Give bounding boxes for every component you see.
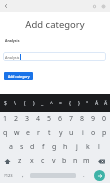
button[interactable]: n <box>70 154 81 168</box>
button[interactable]: = <box>56 94 65 112</box>
staticText: h <box>63 142 68 152</box>
button[interactable]: ) <box>29 94 38 112</box>
button[interactable]: j <box>71 140 82 154</box>
staticText: 9 <box>91 114 96 124</box>
staticText: f <box>42 142 45 152</box>
button[interactable]: 9 <box>88 112 99 126</box>
button[interactable]: 5 <box>44 112 55 126</box>
staticText: Å <box>95 100 99 107</box>
staticText: . <box>83 171 85 179</box>
staticText: = <box>59 100 62 107</box>
button[interactable]: u <box>66 126 77 140</box>
button[interactable]: z <box>14 154 26 168</box>
button[interactable]: d <box>27 140 38 154</box>
button[interactable]: m <box>81 154 92 168</box>
staticText: t <box>48 128 51 138</box>
button[interactable]: r <box>33 126 44 140</box>
staticText: e <box>26 128 30 138</box>
button[interactable]: g <box>49 140 60 154</box>
button[interactable]: _ <box>38 94 47 112</box>
button[interactable]: f <box>38 140 49 154</box>
button[interactable]: { <box>65 94 74 112</box>
button[interactable]: t <box>44 126 55 140</box>
staticText: u <box>69 128 74 138</box>
staticText: l <box>98 142 100 152</box>
button[interactable]: ^ <box>47 94 56 112</box>
staticText: ° <box>86 100 89 107</box>
button[interactable]: Ä <box>101 94 110 112</box>
staticText: d <box>30 142 35 152</box>
staticText: 6 <box>58 114 63 124</box>
staticText: 3 <box>25 114 30 124</box>
staticText: ( <box>24 100 26 107</box>
button[interactable]: $ <box>0 94 10 112</box>
button[interactable]: ?123 <box>0 168 17 182</box>
staticText: c <box>41 156 45 166</box>
staticText: $ <box>4 100 7 107</box>
button[interactable]: s <box>16 140 27 154</box>
staticText: ?123 <box>4 173 13 178</box>
button[interactable]: v <box>48 154 59 168</box>
button[interactable]: 0 <box>99 112 110 126</box>
staticText: s <box>20 142 24 152</box>
staticText: i <box>82 128 84 138</box>
button[interactable]: Add category <box>4 72 33 80</box>
button[interactable]: 4 <box>33 112 44 126</box>
staticText: z <box>18 156 22 166</box>
staticText: Add category <box>0 18 110 31</box>
button[interactable]: a <box>6 140 16 154</box>
button[interactable]: o <box>88 126 99 140</box>
staticText: 2 <box>14 114 19 124</box>
staticText: { <box>69 100 71 107</box>
staticText: 4 <box>36 114 41 124</box>
button[interactable]: , <box>17 168 28 182</box>
staticText: 5 <box>47 114 52 124</box>
staticText: 7 <box>69 114 74 124</box>
button[interactable]: x <box>26 154 37 168</box>
button[interactable]: b <box>59 154 70 168</box>
button[interactable]: Enter <box>94 170 105 181</box>
button[interactable]: Å <box>92 94 101 112</box>
staticText: w <box>14 128 20 138</box>
staticText: Analysis <box>5 55 20 60</box>
staticText: 8 <box>80 114 85 124</box>
button[interactable]: Shift <box>0 154 14 168</box>
staticText: k <box>86 142 90 152</box>
button[interactable]: 6 <box>55 112 66 126</box>
staticText: 0 <box>102 114 107 124</box>
button[interactable]: Backspace <box>92 154 110 168</box>
staticText: g <box>52 142 57 152</box>
button[interactable]: Analysis <box>3 52 106 61</box>
staticText: ^ <box>50 100 53 107</box>
staticText: y <box>59 128 63 138</box>
button[interactable]: q <box>0 126 11 140</box>
button[interactable]: ° <box>83 94 92 112</box>
staticText: r <box>37 128 40 138</box>
staticText: a <box>9 142 13 152</box>
button[interactable]: i <box>77 126 88 140</box>
button[interactable]: 7 <box>66 112 77 126</box>
staticText: Ä <box>104 100 108 107</box>
button[interactable]: Back <box>0 0 12 12</box>
button[interactable]: k <box>82 140 93 154</box>
button[interactable]: 3 <box>22 112 33 126</box>
button[interactable]: . <box>78 168 89 182</box>
button[interactable]: c <box>37 154 48 168</box>
staticText: o <box>91 128 96 138</box>
button[interactable]: 2 <box>11 112 22 126</box>
button[interactable]: e <box>22 126 33 140</box>
staticText: _ <box>41 100 44 107</box>
button[interactable]: } <box>74 94 83 112</box>
button[interactable]: l <box>93 140 104 154</box>
staticText: \ <box>14 100 16 107</box>
button[interactable]: ( <box>20 94 29 112</box>
button[interactable]: 1 <box>0 112 11 126</box>
button[interactable]: 8 <box>77 112 88 126</box>
button[interactable]: h <box>60 140 71 154</box>
button[interactable]: y <box>55 126 66 140</box>
button[interactable]: p <box>99 126 110 140</box>
button[interactable]: \ <box>10 94 20 112</box>
staticText: m <box>83 156 90 166</box>
button[interactable]: w <box>11 126 22 140</box>
